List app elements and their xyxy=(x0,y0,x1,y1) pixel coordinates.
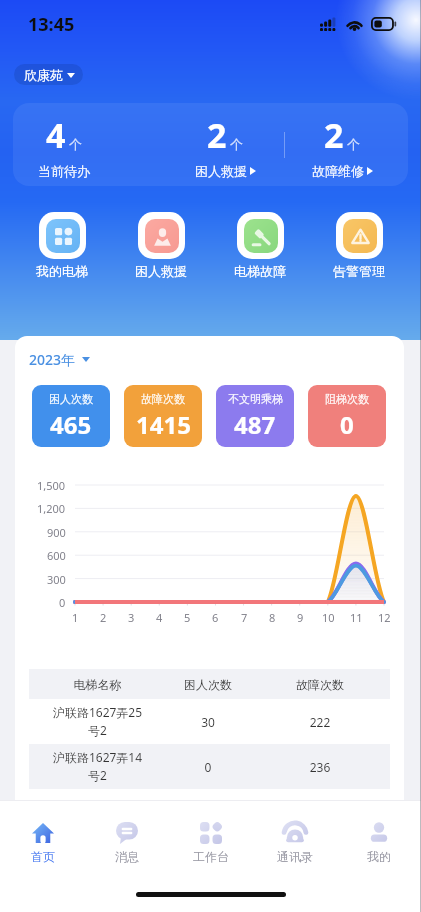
button[interactable]: 阻梯次数 xyxy=(308,385,386,447)
staticText: 9 xyxy=(297,610,304,625)
staticText: 工作台 xyxy=(193,849,229,864)
staticText: 当前待办 xyxy=(38,163,90,179)
button[interactable]: 4 xyxy=(14,110,114,180)
staticText: 4 xyxy=(156,610,163,625)
staticText: 7 xyxy=(241,610,248,625)
button[interactable]: 我的电梯 xyxy=(17,212,107,279)
staticText: 30 xyxy=(166,714,250,730)
button[interactable]: 我的 xyxy=(337,800,421,878)
staticText: 1,500 xyxy=(37,478,66,493)
button[interactable]: 困人救援 xyxy=(116,212,206,279)
button[interactable]: 不文明乘梯 xyxy=(216,385,294,447)
staticText: 600 xyxy=(47,548,66,563)
staticText: 2 xyxy=(207,112,227,158)
staticText: 0 xyxy=(59,595,66,610)
button[interactable]: 电梯故障 xyxy=(215,212,305,279)
staticText: 12 xyxy=(378,610,391,625)
staticText: 11 xyxy=(350,610,363,625)
staticText: 通讯录 xyxy=(277,849,313,864)
button[interactable]: 故障次数 xyxy=(124,385,202,447)
button[interactable]: 沪联路1627弄14 号2 xyxy=(29,744,390,789)
staticText: 1 xyxy=(72,610,79,625)
button[interactable]: 2 xyxy=(175,110,275,180)
staticText: 2 xyxy=(324,112,344,158)
staticText: 故障次数 xyxy=(250,677,390,692)
staticText: 900 xyxy=(47,525,66,540)
staticText: 我的 xyxy=(367,849,391,864)
staticText: 首页 xyxy=(31,849,55,864)
button[interactable]: 2023年 xyxy=(29,350,90,369)
staticText: 0 xyxy=(166,759,250,775)
staticText: 困人次数 xyxy=(166,677,250,692)
staticText: 沪联路1627弄25 号2 xyxy=(33,704,162,739)
staticText: 4 xyxy=(46,112,66,158)
staticText: 沪联路1627弄14 号2 xyxy=(33,749,162,784)
staticText: 300 xyxy=(47,572,66,587)
staticText: 个 xyxy=(230,136,243,152)
staticText: 困人救援 xyxy=(135,263,187,279)
staticText: 0 xyxy=(340,408,354,441)
staticText: 1415 xyxy=(136,408,191,441)
staticText: 电梯名称 xyxy=(29,677,166,692)
staticText: 6 xyxy=(212,610,219,625)
staticText: 10 xyxy=(322,610,335,625)
staticText: 5 xyxy=(184,610,191,625)
staticText: 故障次数 xyxy=(141,392,185,406)
button[interactable]: 首页 xyxy=(0,800,85,878)
staticText: 消息 xyxy=(115,849,139,864)
staticText: 不文明乘梯 xyxy=(228,392,283,406)
button[interactable]: 2 xyxy=(292,110,392,180)
staticText: 13:45 xyxy=(28,12,75,37)
staticText: 告警管理 xyxy=(333,263,385,279)
staticText: 我的电梯 xyxy=(36,263,88,279)
staticText: 2023年 xyxy=(29,350,76,369)
button[interactable]: 告警管理 xyxy=(314,212,404,279)
button[interactable]: 工作台 xyxy=(169,800,253,878)
staticText: 487 xyxy=(234,408,276,441)
button[interactable]: 欣康苑 xyxy=(14,64,83,85)
button[interactable]: 消息 xyxy=(85,800,169,878)
staticText: 电梯故障 xyxy=(234,263,286,279)
staticText: 3 xyxy=(128,610,135,625)
staticText: 222 xyxy=(250,714,390,730)
staticText: 阻梯次数 xyxy=(325,392,369,406)
staticText: 个 xyxy=(347,136,360,152)
staticText: 困人次数 xyxy=(49,392,93,406)
staticText: 2 xyxy=(100,610,107,625)
staticText: 困人救援 xyxy=(195,163,247,179)
staticText: 1,200 xyxy=(37,501,66,516)
staticText: 欣康苑 xyxy=(24,67,63,83)
button[interactable]: 困人次数 xyxy=(32,385,110,447)
button[interactable]: 沪联路1627弄25 号2 xyxy=(29,699,390,744)
staticText: 8 xyxy=(269,610,276,625)
staticText: 故障维修 xyxy=(312,163,364,179)
button[interactable]: 通讯录 xyxy=(253,800,337,878)
staticText: 个 xyxy=(69,136,82,152)
staticText: 236 xyxy=(250,759,390,775)
staticText: 465 xyxy=(50,408,92,441)
